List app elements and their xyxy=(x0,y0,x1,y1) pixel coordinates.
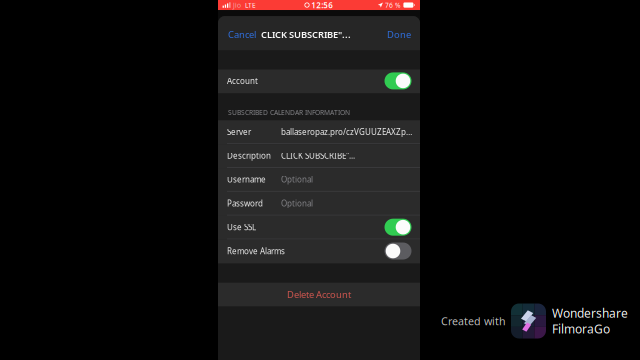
staticText: CLICK SUBSCRIBE"... xyxy=(281,150,355,161)
button[interactable]: Username xyxy=(218,168,420,192)
staticText: FilmoraGo xyxy=(552,321,610,337)
staticText: Created with xyxy=(441,314,506,328)
staticText: Remove Alarms xyxy=(227,246,285,256)
staticText: Optional xyxy=(281,174,313,185)
staticText: Server xyxy=(227,126,251,137)
button[interactable]: Account xyxy=(218,69,420,93)
staticText: ballaseropaz.pro/czVGUUZEAXZpd... xyxy=(281,126,414,137)
staticText: 76 % xyxy=(385,1,401,9)
button[interactable]: Description xyxy=(218,144,420,168)
button[interactable]: Server xyxy=(218,120,420,144)
staticText: Cancel xyxy=(228,28,256,40)
staticText: Optional xyxy=(281,198,313,209)
staticText: CLICK SUBSCRIBE"... xyxy=(261,28,351,40)
staticText: Done xyxy=(387,28,411,40)
staticText: Jio xyxy=(233,1,241,9)
staticText: Delete Account xyxy=(287,288,351,301)
button[interactable]: Password xyxy=(218,192,420,216)
button[interactable]: Delete Account xyxy=(218,283,420,306)
staticText: Password xyxy=(227,198,263,209)
staticText: Use SSL xyxy=(227,222,256,232)
staticText: 12:56 xyxy=(311,0,333,10)
staticText: Username xyxy=(227,174,266,185)
button[interactable]: Use SSL xyxy=(218,216,420,240)
staticText: SUBSCRIBED CALENDAR INFORMATION xyxy=(228,108,350,117)
staticText: LTE xyxy=(245,1,256,9)
staticText: Description xyxy=(227,150,271,161)
button[interactable]: Remove Alarms xyxy=(218,240,420,263)
button[interactable]: Done xyxy=(386,22,412,46)
staticText: Wondershare xyxy=(552,305,628,321)
staticText: Account xyxy=(227,76,258,86)
button[interactable]: Cancel xyxy=(227,22,257,46)
